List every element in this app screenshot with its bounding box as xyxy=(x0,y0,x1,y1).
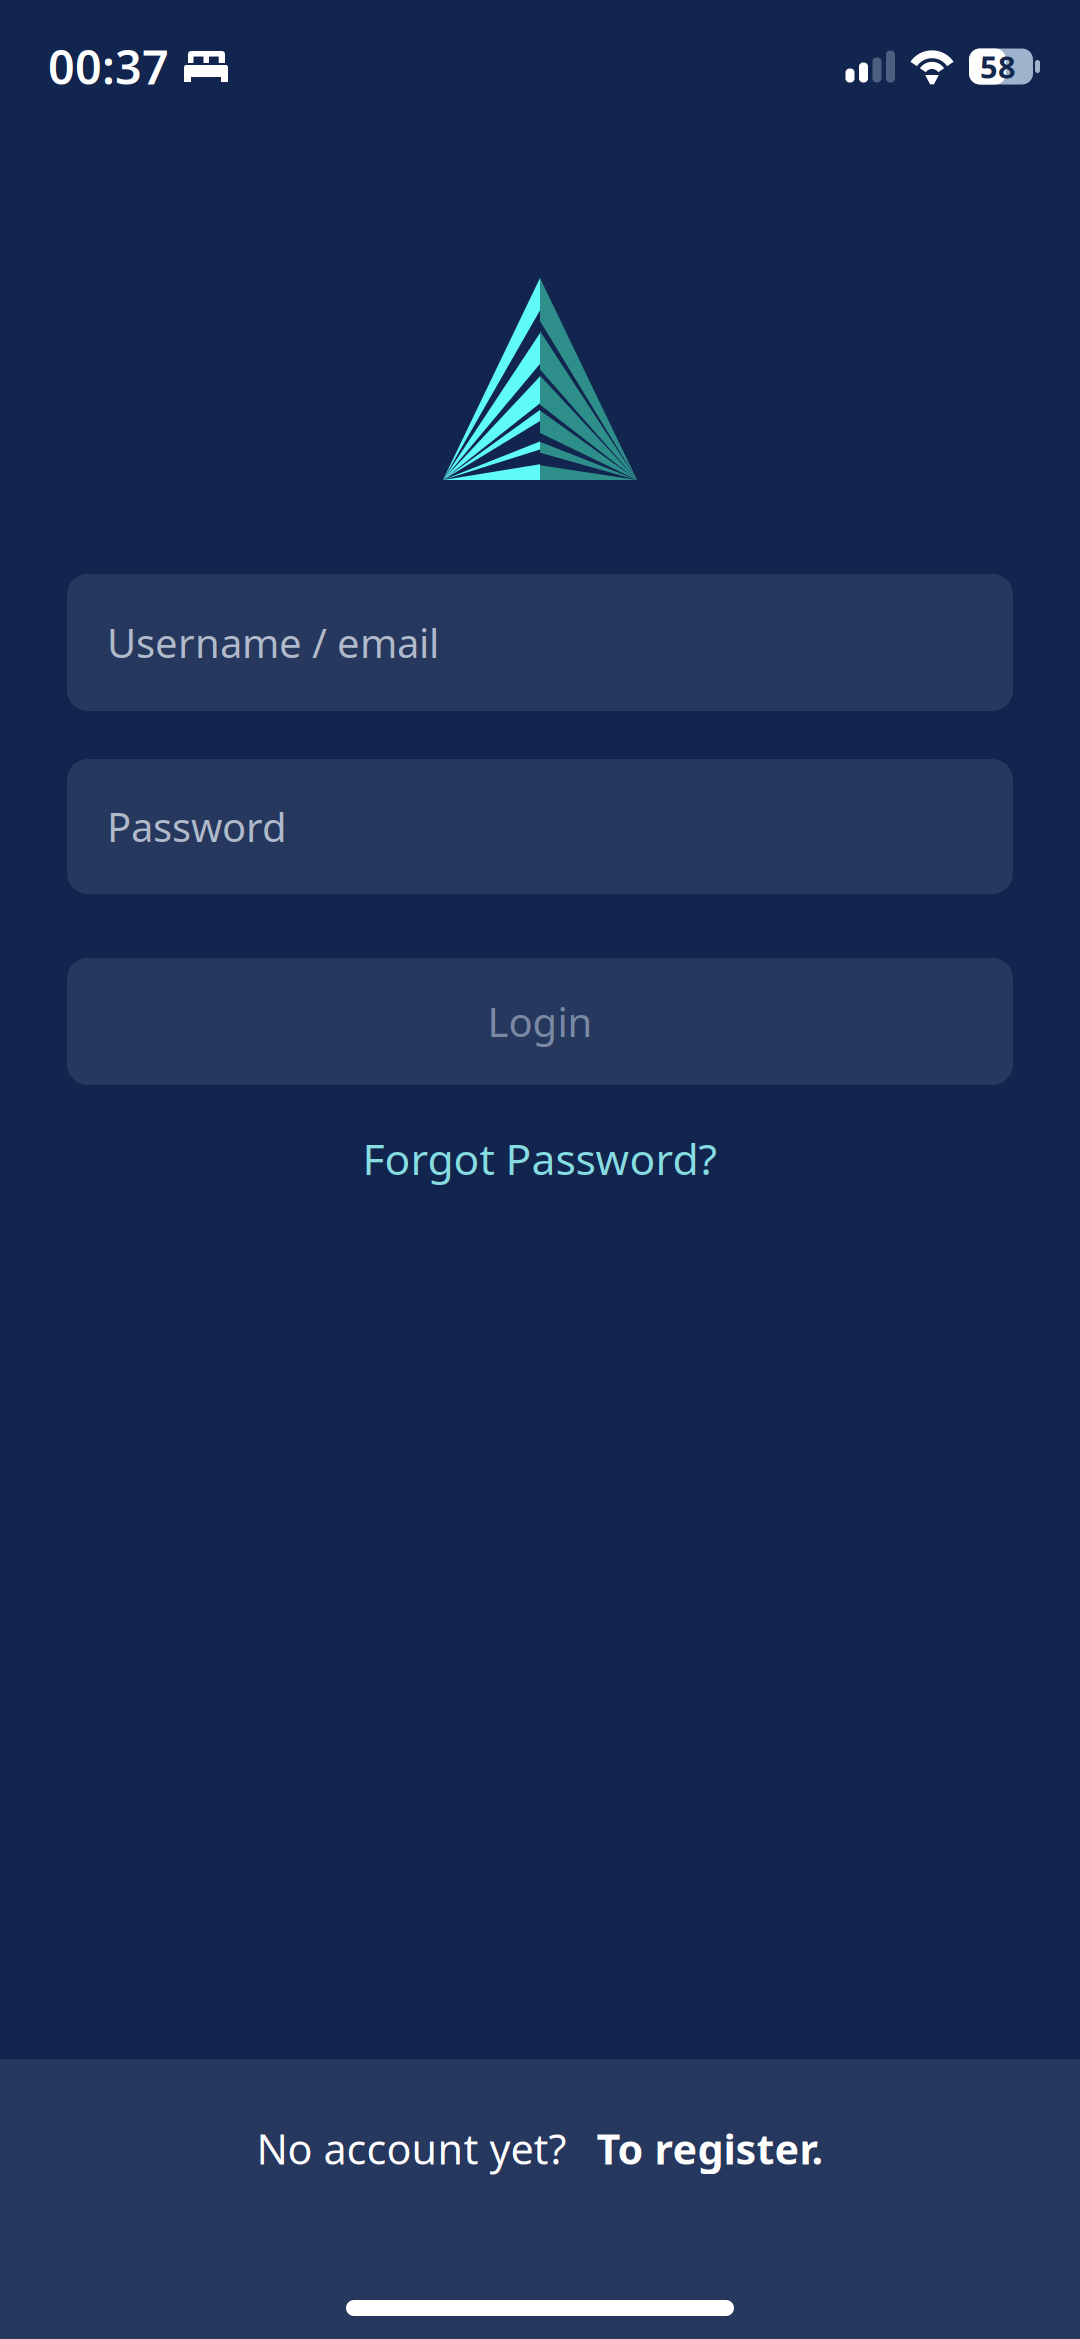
staticText: Login xyxy=(487,995,592,1048)
button[interactable]: No account yet? xyxy=(0,2059,1080,2339)
button[interactable]: Forgot Password? xyxy=(334,1116,745,1201)
button[interactable]: Username / email xyxy=(0,574,1080,711)
staticText: 58 xyxy=(980,46,1016,87)
button[interactable]: Password xyxy=(0,759,1080,894)
staticText: To register. xyxy=(596,2121,823,2176)
staticText: Password xyxy=(107,800,287,853)
staticText: Username / email xyxy=(107,616,439,669)
staticText: Forgot Password? xyxy=(362,1130,717,1187)
staticText: 00:37 xyxy=(48,35,169,97)
button[interactable]: Login xyxy=(0,958,1080,1085)
staticText: No account yet? xyxy=(256,2121,566,2176)
